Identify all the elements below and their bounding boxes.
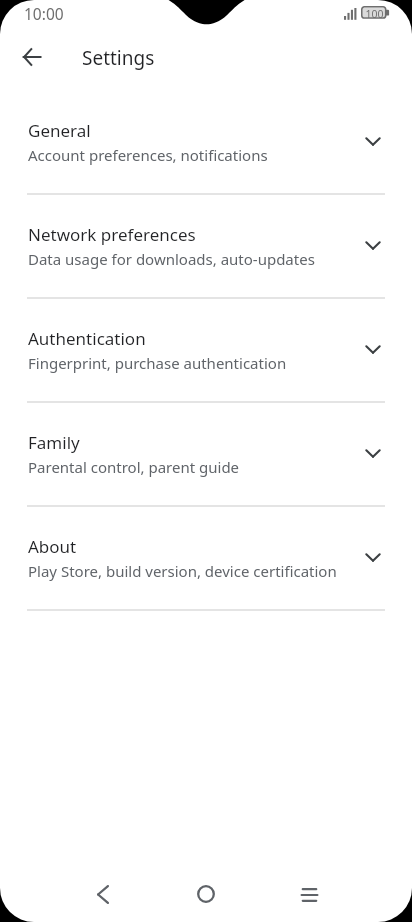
button[interactable]: Family (0, 403, 412, 507)
staticText: 100 (364, 7, 385, 21)
button[interactable]: About (0, 507, 412, 611)
button[interactable]: Authentication (0, 299, 412, 403)
staticText: Authentication (28, 327, 146, 350)
staticText: Play Store, build version, device certif… (28, 561, 337, 581)
staticText: Data usage for downloads, auto-updates (28, 249, 315, 269)
button[interactable]: General (0, 91, 412, 195)
button[interactable]: Back (84, 875, 122, 913)
button[interactable]: Back (16, 41, 48, 73)
staticText: 10:00 (24, 3, 64, 24)
staticText: Parental control, parent guide (28, 457, 240, 477)
staticText: Settings (82, 45, 155, 71)
staticText: Fingerprint, purchase authentication (28, 353, 287, 373)
staticText: Account preferences, notifications (28, 145, 268, 165)
staticText: About (28, 535, 77, 558)
staticText: Network preferences (28, 223, 196, 246)
staticText: Family (28, 431, 80, 454)
button[interactable]: Home (187, 875, 225, 913)
staticText: General (28, 119, 91, 142)
button[interactable]: Recent apps (290, 875, 328, 913)
button[interactable]: Network preferences (0, 195, 412, 299)
